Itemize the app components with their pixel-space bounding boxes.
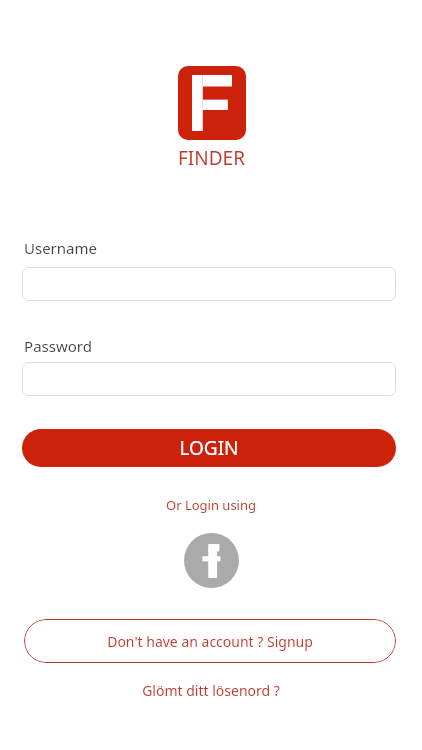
button[interactable]: Login with Facebook (184, 533, 239, 588)
button[interactable] (22, 267, 396, 301)
button[interactable]: Glömt ditt lösenord ? (134, 678, 288, 703)
button[interactable]: Don't have an account ? Signup (24, 619, 396, 663)
staticText: LOGIN (179, 435, 239, 461)
staticText: Glömt ditt lösenord ? (142, 681, 280, 700)
button[interactable] (178, 66, 246, 140)
button[interactable] (22, 362, 396, 396)
staticText: Or Login using (166, 496, 256, 514)
staticText: Username (24, 238, 97, 258)
staticText: Password (24, 336, 92, 356)
staticText: FINDER (178, 145, 245, 171)
button[interactable]: LOGIN (22, 429, 396, 467)
staticText: Don't have an account ? Signup (107, 632, 313, 651)
